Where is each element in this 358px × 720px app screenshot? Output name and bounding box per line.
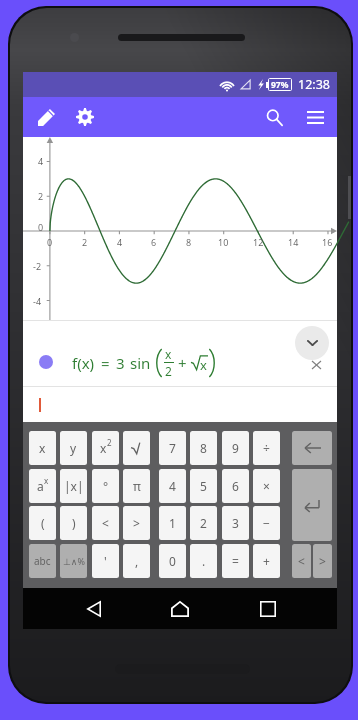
button[interactable]: Edit [26, 97, 66, 137]
button[interactable]: Recents [250, 591, 286, 627]
staticText: ( [41, 515, 45, 531]
button[interactable]: 1 [159, 506, 186, 540]
staticText: x [200, 356, 207, 374]
button[interactable]: Left [292, 544, 311, 578]
staticText: − [263, 515, 270, 531]
staticText: ' [104, 553, 107, 569]
button[interactable]: ( [29, 506, 56, 540]
staticText: 7 [169, 440, 176, 456]
staticText: 12 [253, 236, 264, 248]
button[interactable]: + [253, 544, 280, 578]
staticText: 2 [82, 236, 88, 248]
staticText: a [37, 478, 44, 494]
staticText: < [102, 515, 109, 531]
button[interactable]: 5 [190, 469, 217, 503]
button[interactable]: 3 [222, 506, 249, 540]
button[interactable]: , [123, 544, 150, 578]
button[interactable]: Back [76, 591, 112, 627]
button[interactable]: 6 [222, 469, 249, 503]
button[interactable]: abc [29, 544, 56, 578]
staticText: 6 [232, 478, 239, 494]
staticText: |x| [64, 478, 84, 494]
button[interactable]: Collapse [295, 326, 329, 360]
button[interactable]: y [60, 431, 87, 465]
button[interactable]: ° [92, 469, 119, 503]
button[interactable]: Menu [295, 97, 335, 137]
staticText: -4 [33, 295, 42, 307]
button[interactable]: Delete [306, 355, 326, 375]
staticText: + [178, 353, 187, 373]
staticText: f(x) [72, 353, 95, 373]
staticText: 9 [232, 440, 239, 456]
staticText: 0 [169, 553, 176, 569]
button[interactable]: a [29, 469, 56, 503]
staticText: 10 [218, 236, 229, 248]
button[interactable]: = [222, 544, 249, 578]
staticText: 3 [232, 515, 239, 531]
staticText: 2 [165, 363, 172, 379]
staticText: . [202, 553, 206, 569]
staticText: x [44, 475, 49, 486]
button[interactable]: 0 [159, 544, 186, 578]
button[interactable]: Home [162, 591, 198, 627]
button[interactable]: × [253, 469, 280, 503]
button[interactable]: Settings [65, 97, 105, 137]
button[interactable]: x [29, 431, 56, 465]
button[interactable]: Search [254, 97, 294, 137]
staticText: + [263, 553, 270, 569]
staticText: 2 [107, 437, 112, 448]
button[interactable]: Right [123, 506, 150, 540]
staticText: y [70, 440, 77, 456]
staticText: 14 [288, 236, 299, 248]
button[interactable]: ' [92, 544, 119, 578]
staticText: 0 [47, 236, 53, 248]
staticText: 4 [117, 236, 123, 248]
staticText: π [133, 478, 141, 494]
button[interactable]: 4 [159, 469, 186, 503]
staticText: , [135, 553, 139, 569]
staticText: > [133, 515, 140, 531]
staticText: -2 [33, 260, 42, 272]
button[interactable]: π [123, 469, 150, 503]
staticText: ⊥∧% [63, 555, 85, 567]
button[interactable]: ) [60, 506, 87, 540]
staticText: 4 [38, 155, 44, 167]
button[interactable]: ⊥∧% [60, 544, 87, 578]
button[interactable]: Right [313, 544, 332, 578]
button[interactable] [123, 431, 150, 465]
staticText: ° [103, 478, 109, 494]
button[interactable]: Backspace [292, 431, 332, 465]
staticText: 0 [38, 221, 44, 233]
staticText: abc [34, 554, 51, 568]
staticText: 12:38 [298, 76, 330, 93]
button[interactable]: 9 [222, 431, 249, 465]
button[interactable]: |x| [60, 469, 87, 503]
button[interactable]: x [92, 431, 119, 465]
button[interactable]: − [253, 506, 280, 540]
button[interactable]: 7 [159, 431, 186, 465]
staticText: = [101, 353, 110, 373]
button[interactable]: Colour [39, 355, 53, 369]
staticText: x [39, 440, 46, 456]
staticText: x [100, 440, 107, 456]
staticText: 5 [200, 478, 207, 494]
staticText: x [165, 346, 172, 362]
staticText: < [298, 553, 305, 569]
staticText: ) [72, 515, 76, 531]
staticText: = [232, 553, 239, 569]
staticText: sin [130, 353, 151, 373]
button[interactable]: ÷ [253, 431, 280, 465]
staticText: 4 [169, 478, 176, 494]
button[interactable]: 2 [190, 506, 217, 540]
staticText: 2 [38, 190, 44, 202]
staticText: 8 [186, 236, 192, 248]
staticText: ÷ [263, 440, 270, 456]
staticText: 3 [116, 353, 125, 373]
button[interactable]: . [190, 544, 217, 578]
button[interactable]: Enter [292, 469, 332, 541]
staticText: 1 [169, 515, 176, 531]
button[interactable]: 8 [190, 431, 217, 465]
staticText: > [319, 553, 326, 569]
staticText: 16 [322, 236, 333, 248]
button[interactable]: Left [92, 506, 119, 540]
